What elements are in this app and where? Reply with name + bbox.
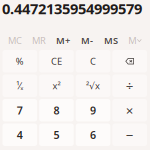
staticText: ¹⁄ₓ — [16, 80, 23, 92]
staticText: M- — [81, 34, 93, 47]
staticText: CE — [51, 55, 62, 67]
staticText: MS — [104, 34, 118, 47]
staticText: 8 — [53, 103, 59, 117]
button[interactable]: Memory list — [123, 33, 147, 48]
button[interactable]: M- — [75, 33, 99, 48]
button[interactable]: M+ — [51, 33, 75, 48]
button[interactable]: 4 — [2, 123, 37, 146]
button[interactable]: ²√x — [76, 74, 110, 97]
staticText: M — [128, 34, 136, 47]
staticText: M+ — [56, 34, 70, 47]
button[interactable]: 6 — [76, 123, 110, 146]
staticText: 7 — [17, 103, 23, 117]
staticText: ÷ — [126, 77, 134, 95]
button[interactable]: MS — [99, 33, 123, 48]
button[interactable]: ¹⁄ₓ — [2, 74, 37, 97]
staticText: MC — [8, 34, 22, 47]
button[interactable]: 8 — [39, 99, 74, 121]
button[interactable]: 9 — [76, 99, 110, 121]
staticText: x² — [52, 80, 60, 92]
staticText: % — [16, 55, 24, 67]
staticText: 5 — [53, 128, 59, 142]
button[interactable]: ÷ — [112, 74, 147, 97]
button[interactable]: Backspace — [112, 50, 147, 72]
button[interactable]: MR — [27, 33, 51, 48]
button[interactable]: × — [112, 99, 147, 121]
staticText: 6 — [90, 128, 96, 142]
staticText: ²√x — [86, 80, 100, 92]
staticText: × — [126, 101, 134, 119]
staticText: 4 — [17, 128, 23, 142]
staticText: MR — [32, 34, 46, 47]
button[interactable]: CE — [39, 50, 74, 72]
button[interactable]: C — [76, 50, 110, 72]
button[interactable]: − — [112, 123, 147, 146]
staticText: 9 — [90, 103, 96, 117]
staticText: C — [90, 55, 96, 67]
button[interactable]: % — [2, 50, 37, 72]
button[interactable]: 7 — [2, 99, 37, 121]
button[interactable]: 5 — [39, 123, 74, 146]
button[interactable]: x² — [39, 74, 74, 97]
staticText: − — [126, 126, 134, 144]
staticText: 0.4472135954999579 — [2, 0, 142, 18]
button[interactable]: MC — [3, 33, 27, 48]
